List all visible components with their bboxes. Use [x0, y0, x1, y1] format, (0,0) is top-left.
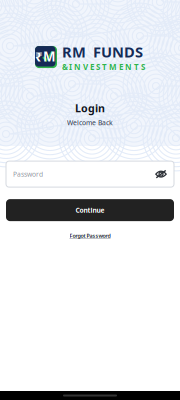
staticText: & I N V E S T M E N T S — [62, 61, 145, 72]
staticText: Welcome Back — [67, 118, 113, 127]
staticText: Login — [75, 101, 105, 115]
staticText: Continue — [75, 206, 104, 215]
staticText: Password — [13, 170, 43, 179]
button[interactable]: Continue — [6, 199, 174, 221]
staticText: RM FUNDS — [62, 42, 143, 61]
button[interactable]: Forgot Password — [69, 232, 110, 239]
staticText: Forgot Password — [69, 232, 110, 239]
button[interactable]: Show password — [155, 169, 167, 179]
staticText: ₹M — [35, 47, 55, 65]
